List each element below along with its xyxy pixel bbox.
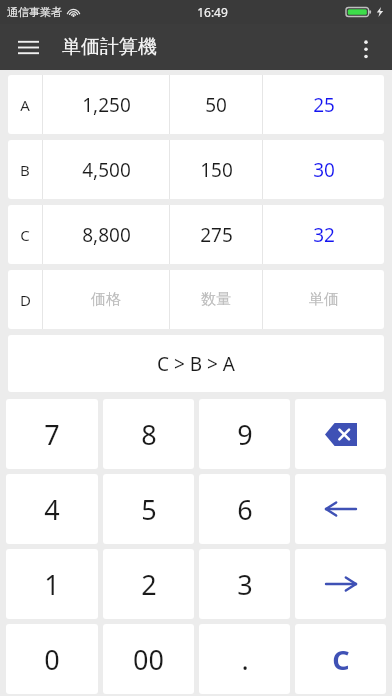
staticText: 50	[205, 92, 227, 118]
staticText: 0	[44, 641, 60, 678]
staticText: C	[20, 225, 30, 245]
staticText: 7	[44, 416, 60, 453]
staticText: 単価計算機	[62, 35, 157, 59]
button[interactable]: Backspace	[295, 399, 386, 469]
staticText: 8,800	[82, 222, 131, 248]
staticText: 2	[141, 566, 157, 603]
staticText: B	[20, 160, 30, 180]
button[interactable]: 5	[103, 474, 194, 544]
staticText: 150	[200, 157, 233, 183]
staticText: 通信事業者	[7, 5, 62, 19]
staticText: 6	[237, 491, 253, 528]
button[interactable]: 7	[6, 399, 98, 469]
staticText: A	[20, 95, 30, 115]
button[interactable]: .	[199, 624, 290, 694]
staticText: 16:49	[197, 4, 228, 20]
button[interactable]: 単価	[263, 270, 384, 329]
staticText: 単価	[309, 290, 339, 309]
button[interactable]: 32	[263, 205, 384, 264]
button[interactable]: 150	[170, 140, 262, 199]
button[interactable]: Previous field	[295, 474, 386, 544]
staticText: 8	[141, 416, 157, 453]
button[interactable]: Next field	[295, 549, 386, 619]
staticText: 1,250	[82, 92, 131, 118]
staticText: 9	[237, 416, 253, 453]
button[interactable]: 25	[263, 75, 384, 134]
button[interactable]: 9	[199, 399, 290, 469]
staticText: 5	[141, 491, 157, 528]
button[interactable]: 0	[6, 624, 98, 694]
button[interactable]: 1	[6, 549, 98, 619]
button[interactable]: 6	[199, 474, 290, 544]
staticText: 1	[44, 566, 60, 603]
staticText: .	[241, 641, 249, 678]
staticText: 32	[313, 222, 335, 248]
staticText: C > B > A	[157, 351, 235, 377]
button[interactable]: 30	[263, 140, 384, 199]
staticText: 数量	[201, 290, 231, 309]
staticText: 4	[44, 491, 60, 528]
button[interactable]: 1,250	[43, 75, 169, 134]
button[interactable]: 4	[6, 474, 98, 544]
staticText: D	[20, 290, 31, 310]
button[interactable]: C > B > A	[8, 335, 384, 392]
button[interactable]: 8,800	[43, 205, 169, 264]
button[interactable]: 価格	[43, 270, 169, 329]
button[interactable]: 8	[103, 399, 194, 469]
staticText: 00	[133, 641, 164, 678]
staticText: 3	[237, 566, 253, 603]
staticText: 価格	[91, 290, 121, 309]
button[interactable]: 3	[199, 549, 290, 619]
button[interactable]: 数量	[170, 270, 262, 329]
staticText: C	[332, 641, 350, 678]
button[interactable]: 50	[170, 75, 262, 134]
staticText: 275	[200, 222, 233, 248]
staticText: 4,500	[82, 157, 131, 183]
button[interactable]: More options	[346, 27, 386, 67]
button[interactable]: C	[295, 624, 386, 694]
button[interactable]: Menu	[8, 27, 48, 67]
staticText: 30	[313, 157, 335, 183]
button[interactable]: 2	[103, 549, 194, 619]
button[interactable]: 275	[170, 205, 262, 264]
button[interactable]: 4,500	[43, 140, 169, 199]
button[interactable]: 00	[103, 624, 194, 694]
staticText: 25	[313, 92, 335, 118]
